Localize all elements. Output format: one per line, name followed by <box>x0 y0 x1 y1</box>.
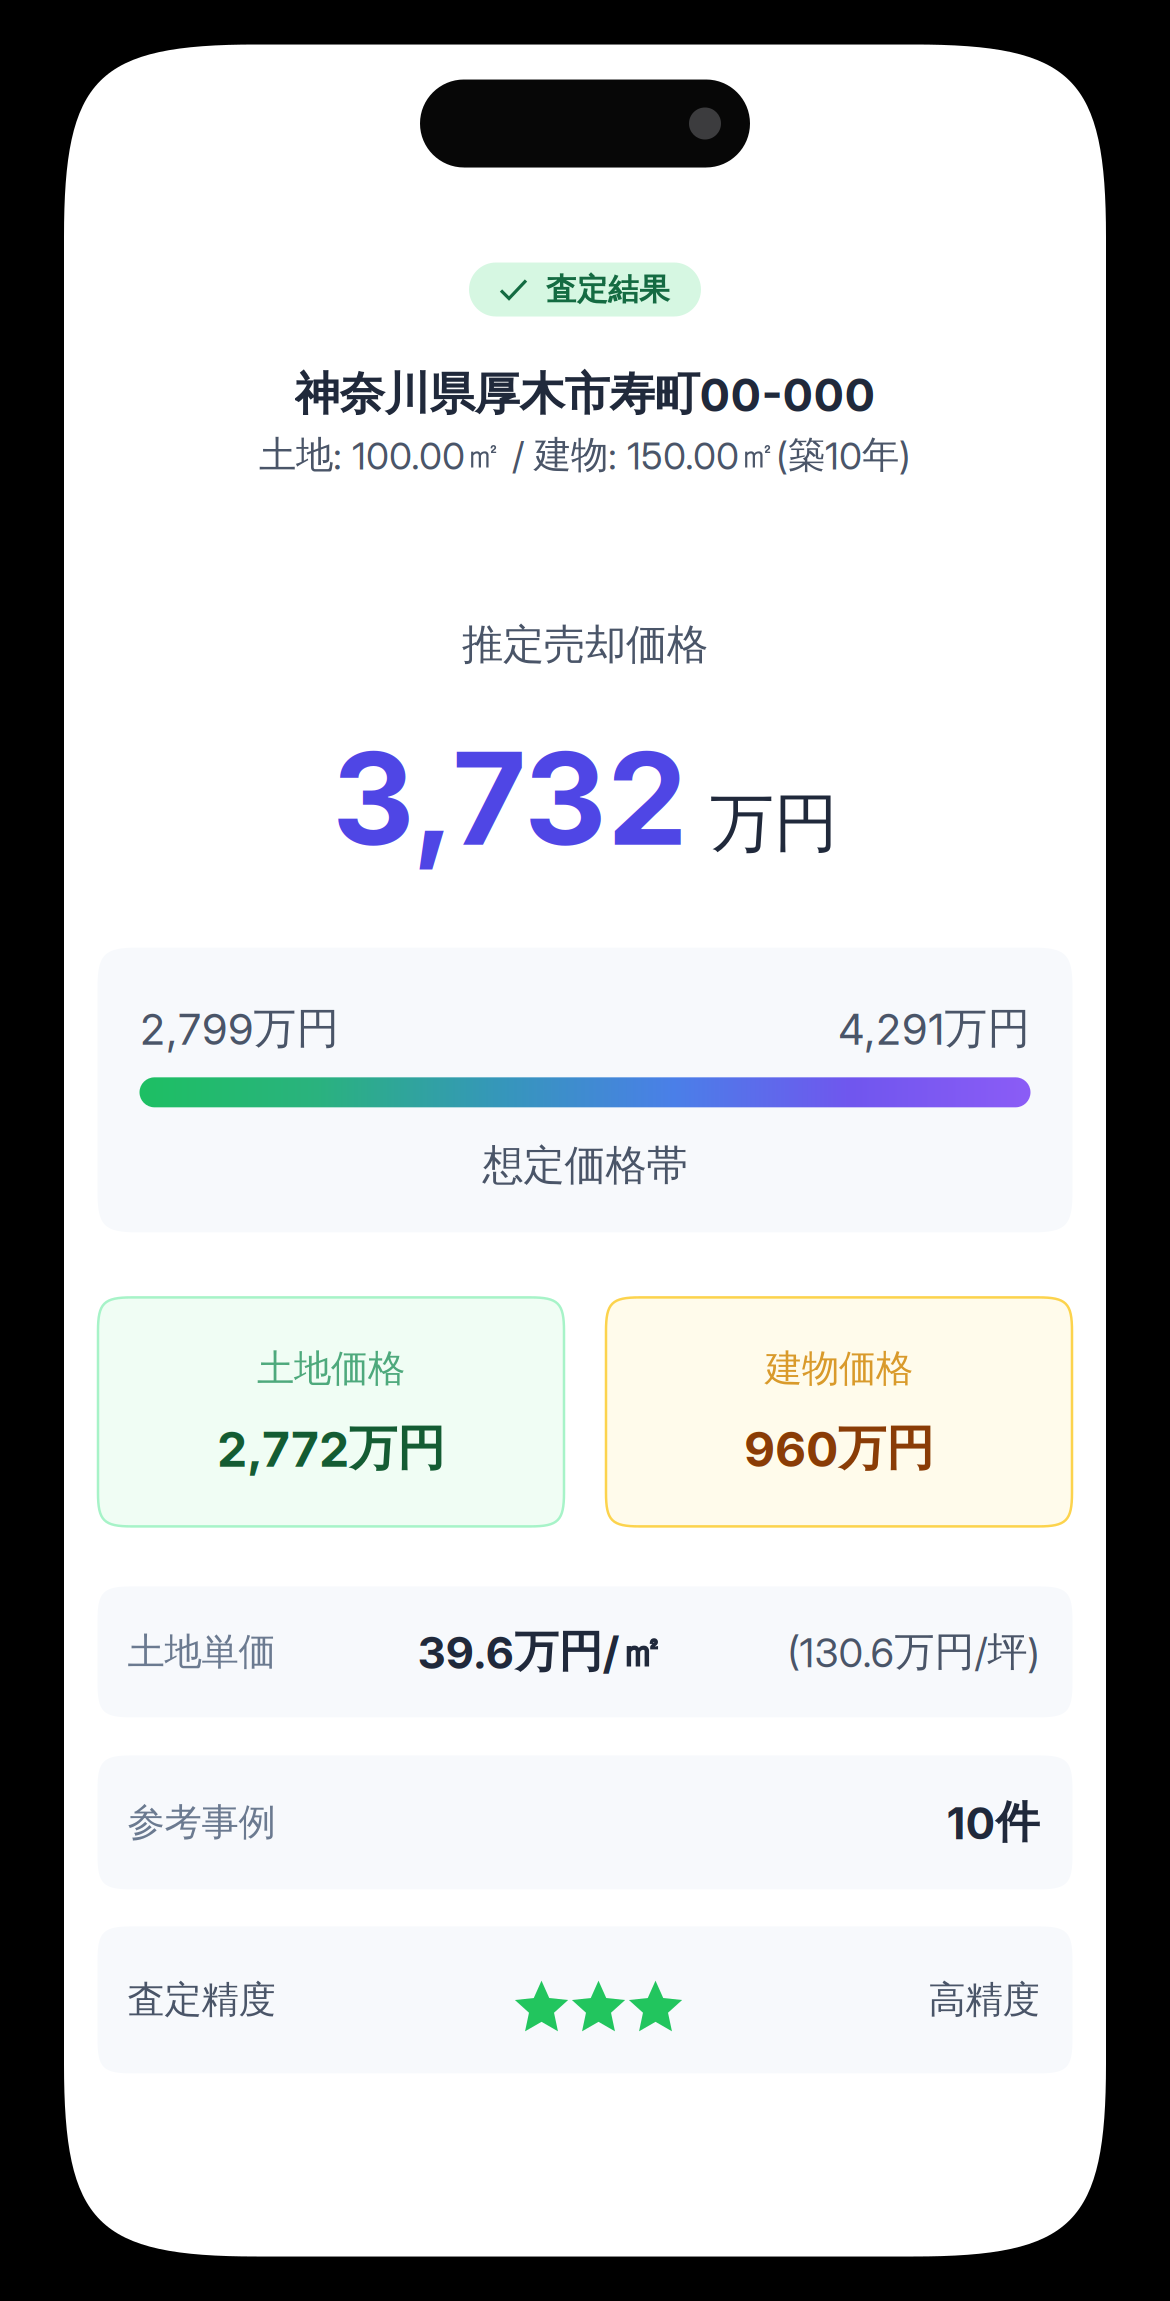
staticText: 神奈川県厚木市寿町00-000 <box>294 365 875 423</box>
staticText: 推定売却価格 <box>462 619 708 671</box>
staticText: 参考事例 <box>127 1799 275 1846</box>
staticText: 2,772万円 <box>217 1418 445 1479</box>
staticText: 39.6万円/㎡ <box>417 1624 663 1680</box>
staticText: 土地: 100.00㎡ / 建物: 150.00㎡(築10年) <box>259 432 911 479</box>
staticText: 土地単価 <box>127 1628 275 1675</box>
button[interactable]: 土地単価 <box>97 1586 1072 1717</box>
button[interactable]: 建物価格 <box>606 1297 1072 1526</box>
staticText: 10件 <box>946 1795 1039 1850</box>
staticText: 2,799万円 <box>139 1002 339 1055</box>
button[interactable]: 参考事例 <box>97 1755 1072 1889</box>
staticText: 想定価格帯 <box>482 1139 687 1191</box>
staticText: 万円 <box>710 783 838 864</box>
staticText: 土地価格 <box>257 1345 405 1392</box>
staticText: 査定精度 <box>127 1976 275 2023</box>
staticText: (130.6万円/坪) <box>787 1627 1039 1677</box>
button[interactable]: 査定精度 <box>97 1926 1072 2073</box>
button[interactable]: 土地価格 <box>98 1297 564 1526</box>
staticText: 960万円 <box>744 1418 934 1479</box>
staticText: 査定結果 <box>546 270 670 309</box>
staticText: 高精度 <box>928 1976 1039 2023</box>
button[interactable]: 査定結果 <box>469 262 701 316</box>
staticText: 3,732 <box>332 721 688 876</box>
staticText: 4,291万円 <box>837 1002 1030 1055</box>
staticText: 建物価格 <box>765 1345 913 1392</box>
